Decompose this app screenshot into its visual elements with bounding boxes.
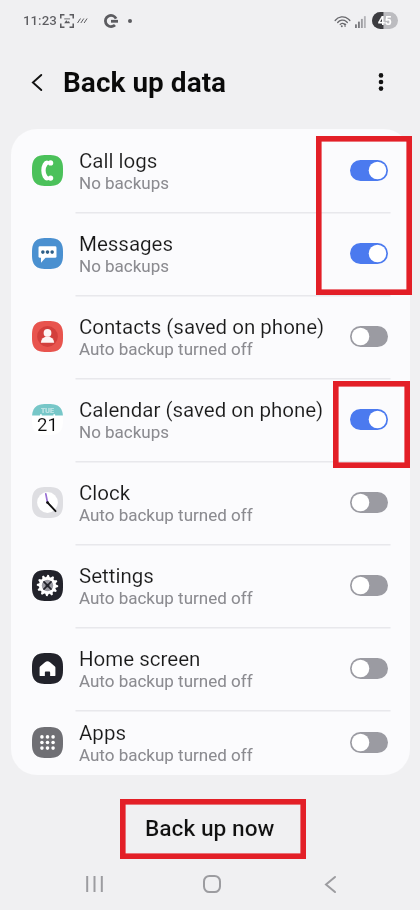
button[interactable]: Back up now	[117, 807, 303, 850]
staticText: TUE	[41, 407, 54, 415]
button[interactable]: Turn on	[350, 732, 388, 753]
button[interactable]: Apps	[11, 710, 410, 775]
button[interactable]: Messages	[11, 212, 410, 295]
button[interactable]: TUE	[11, 378, 410, 461]
button[interactable]: Turn on	[350, 492, 388, 513]
button[interactable]: Turn on	[350, 326, 388, 347]
staticText: Contacts (saved on phone)	[79, 315, 325, 339]
staticText: Apps	[79, 721, 126, 745]
button[interactable]: Turn off	[350, 160, 388, 181]
staticText: Calendar (saved on phone)	[79, 398, 324, 422]
staticText: Clock	[79, 481, 131, 505]
staticText: Auto backup turned off	[79, 671, 253, 691]
staticText: Auto backup turned off	[79, 745, 253, 765]
staticText: 45	[378, 14, 392, 28]
staticText: No backups	[79, 256, 170, 276]
button[interactable]: Clock	[11, 461, 410, 544]
button[interactable]: Settings	[11, 544, 410, 627]
button[interactable]: Contacts (saved on phone)	[11, 295, 410, 378]
staticText: 21	[37, 414, 58, 436]
staticText: Messages	[79, 232, 174, 256]
button[interactable]: Turn off	[350, 243, 388, 264]
staticText: Settings	[79, 564, 154, 588]
staticText: Auto backup turned off	[79, 505, 253, 525]
button[interactable]: Turn on	[350, 658, 388, 679]
staticText: No backups	[79, 422, 170, 442]
staticText: Back up now	[145, 815, 275, 842]
staticText: 11:23	[23, 13, 57, 29]
button[interactable]: More options	[362, 63, 400, 101]
button[interactable]: Recent apps	[66, 856, 122, 910]
staticText: Auto backup turned off	[79, 339, 253, 359]
staticText: Home screen	[79, 647, 201, 671]
button[interactable]: Turn off	[350, 409, 388, 430]
staticText: No backups	[79, 173, 170, 193]
button[interactable]: Home	[184, 856, 240, 910]
button[interactable]: Navigate up	[18, 63, 56, 101]
button[interactable]: Back	[302, 856, 358, 910]
button[interactable]: Call logs	[11, 129, 410, 212]
staticText: Call logs	[79, 149, 158, 173]
button[interactable]: Home screen	[11, 627, 410, 710]
staticText: Back up data	[63, 66, 227, 99]
button[interactable]: Turn on	[350, 575, 388, 596]
staticText: Auto backup turned off	[79, 588, 253, 608]
